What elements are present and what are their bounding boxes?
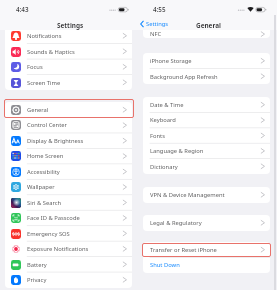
staticText: Dictionary bbox=[150, 163, 178, 171]
staticText: VPN & Device Management bbox=[150, 191, 225, 199]
staticText: 4:55 bbox=[153, 5, 166, 14]
button[interactable]: Emergency SOS bbox=[5, 226, 132, 241]
staticText: Control Center bbox=[27, 121, 67, 129]
button[interactable]: iPhone Storage bbox=[143, 53, 270, 69]
button[interactable]: Wallpaper bbox=[5, 179, 132, 194]
button[interactable]: NFC bbox=[143, 23, 270, 38]
button[interactable]: Dictionary bbox=[143, 159, 270, 174]
button[interactable]: Battery bbox=[5, 257, 132, 272]
staticText: Keyboard bbox=[150, 116, 176, 124]
button[interactable]: Transfer or Reset iPhone bbox=[143, 242, 270, 257]
button[interactable]: Exposure Notifications bbox=[5, 241, 132, 256]
staticText: 4:43 bbox=[16, 5, 29, 14]
button[interactable]: Display & Brightness bbox=[5, 133, 132, 148]
staticText: Notifications bbox=[27, 32, 62, 40]
button[interactable]: Keyboard bbox=[143, 112, 270, 127]
button[interactable]: Date & Time bbox=[143, 97, 270, 112]
button[interactable]: Focus bbox=[5, 59, 132, 75]
staticText: General bbox=[196, 21, 221, 30]
staticText: Background App Refresh bbox=[150, 73, 218, 81]
button[interactable]: Privacy bbox=[5, 272, 132, 287]
button[interactable]: Screen Time bbox=[5, 75, 132, 90]
staticText: Siri & Search bbox=[27, 199, 62, 207]
staticText: Sounds & Haptics bbox=[27, 48, 75, 56]
button[interactable]: Sounds & Haptics bbox=[5, 44, 132, 60]
staticText: Accessibility bbox=[27, 168, 60, 176]
staticText: Date & Time bbox=[150, 101, 184, 109]
staticText: Fonts bbox=[150, 132, 165, 140]
staticText: Focus bbox=[27, 63, 43, 71]
staticText: Settings bbox=[57, 21, 84, 30]
staticText: Shut Down bbox=[150, 261, 180, 269]
staticText: Screen Time bbox=[27, 79, 61, 87]
staticText: Privacy bbox=[27, 276, 47, 284]
button[interactable]: Accessibility bbox=[5, 164, 132, 179]
button[interactable]: Control Center bbox=[5, 117, 132, 132]
button[interactable]: Language & Region bbox=[143, 143, 270, 158]
button[interactable]: Notifications bbox=[5, 28, 132, 44]
staticText: Exposure Notifications bbox=[27, 245, 89, 253]
button[interactable]: Shut Down bbox=[143, 257, 270, 272]
staticText: Wallpaper bbox=[27, 183, 55, 191]
staticText: Settings bbox=[146, 20, 169, 28]
staticText: General bbox=[27, 106, 49, 114]
button[interactable]: Fonts bbox=[143, 128, 270, 143]
staticText: Transfer or Reset iPhone bbox=[150, 246, 217, 254]
button[interactable]: Home Screen bbox=[5, 148, 132, 163]
staticText: Home Screen bbox=[27, 152, 64, 160]
button[interactable]: Legal & Regulatory bbox=[143, 215, 270, 231]
staticText: Legal & Regulatory bbox=[150, 219, 202, 227]
staticText: iPhone Storage bbox=[150, 57, 192, 65]
staticText: Battery bbox=[27, 261, 47, 269]
button[interactable]: Face ID & Passcode bbox=[5, 210, 132, 225]
staticText: Emergency SOS bbox=[27, 230, 70, 238]
button[interactable]: Siri & Search bbox=[5, 195, 132, 210]
staticText: Language & Region bbox=[150, 147, 204, 155]
button[interactable]: Background App Refresh bbox=[143, 69, 270, 84]
button[interactable]: General bbox=[5, 102, 132, 117]
staticText: NFC bbox=[150, 30, 162, 38]
staticText: Display & Brightness bbox=[27, 137, 84, 145]
button[interactable]: VPN & Device Management bbox=[143, 187, 270, 203]
button[interactable]: Settings bbox=[140, 20, 169, 28]
staticText: Face ID & Passcode bbox=[27, 214, 80, 222]
